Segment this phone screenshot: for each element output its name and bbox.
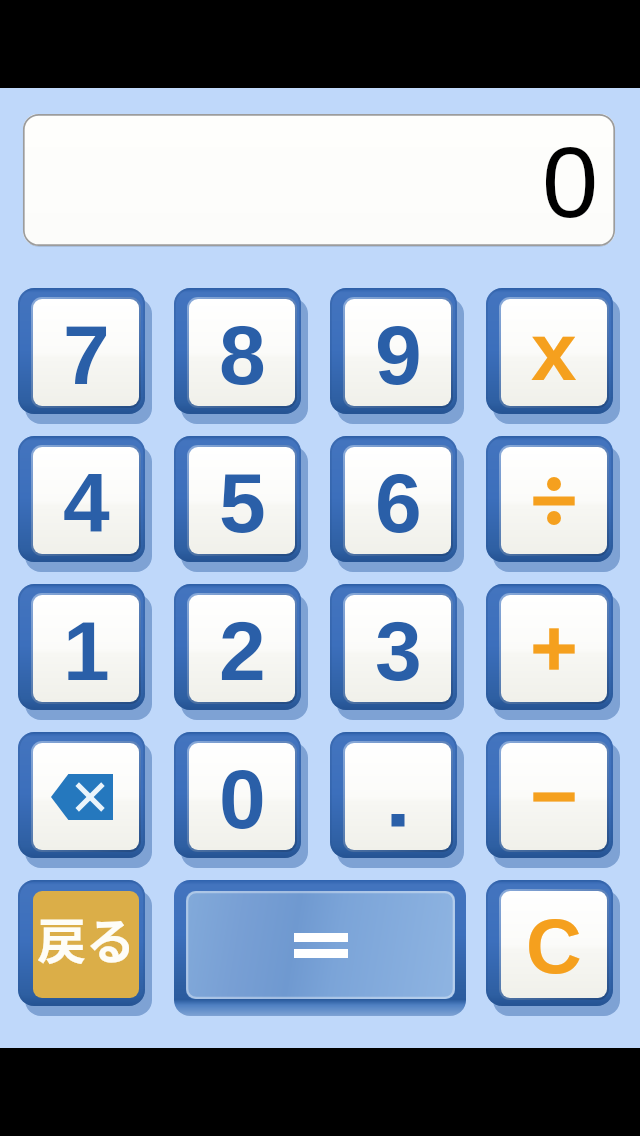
- staticText: 9: [375, 308, 422, 402]
- button[interactable]: 9: [330, 288, 464, 424]
- staticText: 8: [219, 308, 266, 402]
- staticText: 2: [219, 604, 266, 698]
- staticText: 3: [375, 604, 422, 698]
- staticText: C: [526, 903, 582, 989]
- button[interactable]: 0: [174, 732, 308, 868]
- button[interactable]: 1: [18, 584, 152, 720]
- staticText: 1: [63, 604, 110, 698]
- button[interactable]: Minus: [486, 732, 620, 868]
- staticText: 戻る: [37, 902, 136, 973]
- button[interactable]: 2: [174, 584, 308, 720]
- button[interactable]: Equals: [174, 880, 466, 1016]
- button[interactable]: Backspace: [18, 732, 152, 868]
- staticText: x: [531, 306, 577, 398]
- button[interactable]: Back: [18, 880, 152, 1016]
- staticText: 0: [219, 752, 266, 846]
- button[interactable]: 8: [174, 288, 308, 424]
- button[interactable]: Decimal point: [330, 732, 464, 868]
- button[interactable]: 6: [330, 436, 464, 572]
- button[interactable]: Divide: [486, 436, 620, 572]
- staticText: 7: [63, 308, 110, 402]
- button[interactable]: 3: [330, 584, 464, 720]
- button[interactable]: 5: [174, 436, 308, 572]
- button[interactable]: Multiply: [486, 288, 620, 424]
- button[interactable]: 4: [18, 436, 152, 572]
- staticText: 5: [219, 456, 266, 550]
- staticText: 0: [542, 126, 599, 239]
- button[interactable]: 7: [18, 288, 152, 424]
- button[interactable]: Plus: [486, 584, 620, 720]
- button[interactable]: Clear: [486, 880, 620, 1016]
- staticText: 4: [63, 456, 110, 550]
- staticText: 6: [375, 456, 422, 550]
